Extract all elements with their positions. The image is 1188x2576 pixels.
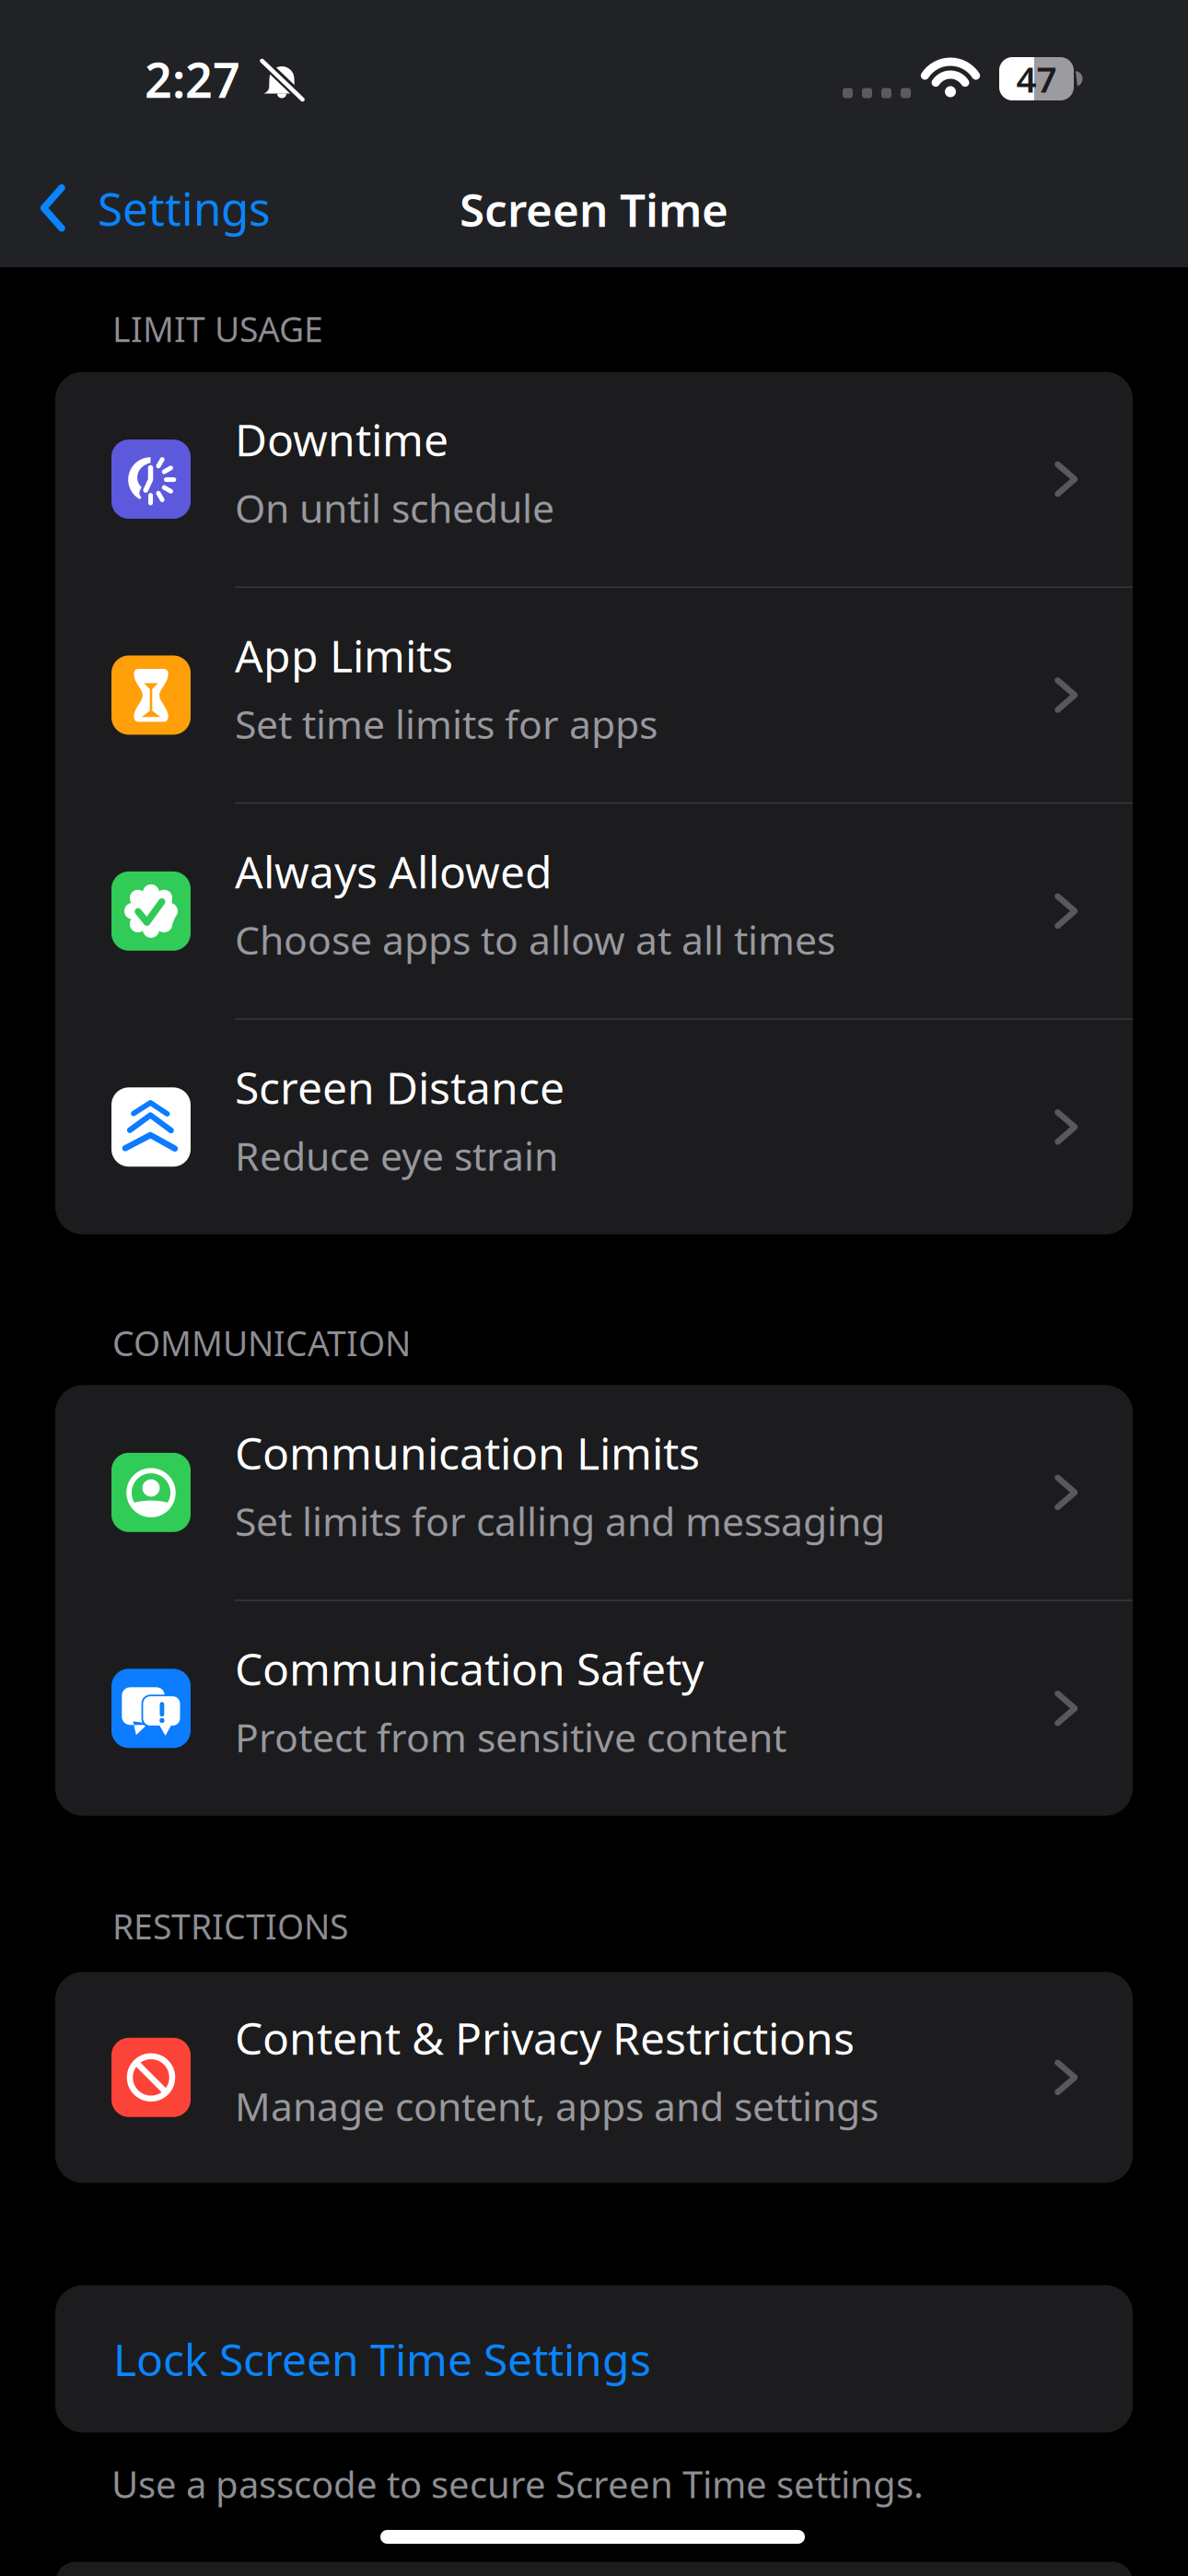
staticText: 47	[1016, 55, 1057, 102]
staticText: Manage content, apps and settings	[235, 2080, 879, 2132]
staticText: Content & Privacy Restrictions	[235, 2008, 855, 2067]
button[interactable]: Communication Limits	[55, 1385, 1133, 1600]
staticText: COMMUNICATION	[112, 1320, 411, 1366]
button[interactable]: Downtime	[55, 372, 1133, 587]
staticText: Reduce eye strain	[235, 1129, 558, 1182]
staticText: Choose apps to allow at all times	[235, 913, 835, 966]
staticText: Use a passcode to secure Screen Time set…	[111, 2459, 924, 2508]
staticText: On until schedule	[235, 481, 554, 534]
staticText: Set time limits for apps	[235, 697, 658, 750]
button[interactable]: Communication Safety	[55, 1601, 1133, 1816]
staticText: LIMIT USAGE	[112, 306, 323, 352]
staticText: Communication Safety	[235, 1639, 704, 1698]
button[interactable]: App Limits	[55, 588, 1133, 802]
button[interactable]: Lock Screen Time Settings	[55, 2285, 1133, 2433]
button[interactable]: Screen Distance	[55, 1020, 1133, 1234]
staticText: RESTRICTIONS	[112, 1903, 348, 1949]
button[interactable]: Always Allowed	[55, 804, 1133, 1018]
staticText: App Limits	[235, 626, 453, 685]
staticText: Always Allowed	[235, 842, 553, 900]
staticText: Settings	[98, 178, 271, 238]
staticText: Screen Time	[460, 179, 728, 239]
staticText: Set limits for calling and messaging	[235, 1495, 885, 1547]
staticText: Screen Distance	[235, 1058, 565, 1116]
staticText: Communication Limits	[235, 1423, 700, 1482]
button[interactable]: Content & Privacy Restrictions	[55, 1972, 1133, 2183]
button[interactable]: Back	[39, 178, 271, 238]
staticText: Lock Screen Time Settings	[113, 2330, 651, 2388]
staticText: Protect from sensitive content	[235, 1711, 786, 1763]
staticText: Downtime	[235, 410, 448, 469]
staticText: 2:27	[145, 47, 240, 111]
